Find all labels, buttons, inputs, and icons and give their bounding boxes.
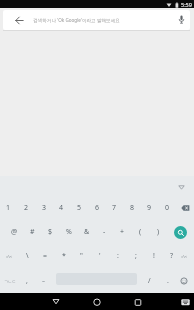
button[interactable]: \ bbox=[19, 246, 36, 266]
button[interactable]: + bbox=[114, 222, 131, 242]
button[interactable]: 9 bbox=[141, 198, 158, 218]
staticText: ; bbox=[135, 251, 137, 261]
button[interactable]: 7 bbox=[106, 198, 123, 218]
staticText: & bbox=[84, 227, 90, 237]
button[interactable]: 5 bbox=[71, 198, 88, 218]
staticText: \ bbox=[26, 251, 29, 261]
staticText: , bbox=[26, 276, 28, 286]
staticText: @ bbox=[11, 227, 18, 237]
staticText: ㄱㄴㄷ bbox=[4, 279, 16, 284]
staticText: ? bbox=[170, 251, 174, 261]
button[interactable] bbox=[176, 199, 194, 217]
button[interactable]: - bbox=[96, 222, 113, 242]
button[interactable]: 3 bbox=[36, 198, 53, 218]
button[interactable]: ? bbox=[163, 246, 180, 266]
button[interactable]: & bbox=[78, 222, 95, 242]
button[interactable] bbox=[177, 296, 193, 308]
staticText: % bbox=[66, 227, 72, 237]
staticText: . bbox=[167, 276, 169, 286]
staticText: 7 bbox=[112, 203, 117, 213]
staticText: # bbox=[30, 227, 35, 237]
button[interactable]: = bbox=[37, 246, 54, 266]
button[interactable]: ) bbox=[150, 222, 167, 242]
button[interactable] bbox=[47, 293, 64, 310]
staticText: : bbox=[117, 251, 119, 261]
staticText: – bbox=[42, 277, 46, 285]
button[interactable] bbox=[88, 293, 105, 310]
button[interactable]: * bbox=[55, 246, 72, 266]
staticText: ) bbox=[157, 227, 160, 237]
button[interactable]: 6 bbox=[89, 198, 106, 218]
button[interactable] bbox=[175, 272, 193, 290]
button[interactable]: 8 bbox=[124, 198, 141, 218]
staticText: 4 bbox=[59, 203, 64, 213]
staticText: 1 bbox=[6, 203, 11, 213]
button[interactable]: ! bbox=[145, 246, 162, 266]
button[interactable] bbox=[174, 226, 187, 239]
staticText: 3 bbox=[42, 203, 47, 213]
button[interactable]: $ bbox=[42, 222, 59, 242]
button[interactable]: =\< bbox=[1, 246, 18, 266]
staticText: + bbox=[120, 227, 125, 237]
button[interactable]: " bbox=[73, 246, 90, 266]
staticText: 0 bbox=[165, 203, 170, 213]
staticText: ( bbox=[139, 227, 142, 237]
button[interactable]: ' bbox=[91, 246, 108, 266]
staticText: ! bbox=[153, 251, 155, 261]
button[interactable]: – bbox=[35, 271, 52, 291]
button[interactable]: , bbox=[18, 271, 35, 291]
button[interactable]: 0 bbox=[159, 198, 176, 218]
button[interactable]: / bbox=[141, 271, 158, 291]
staticText: 8 bbox=[130, 203, 135, 213]
button[interactable]: ( bbox=[132, 222, 149, 242]
staticText: =\< bbox=[181, 254, 188, 259]
staticText: 2 bbox=[24, 203, 29, 213]
button[interactable]: 4 bbox=[53, 198, 70, 218]
button[interactable] bbox=[129, 293, 146, 310]
staticText: =\< bbox=[6, 254, 13, 259]
staticText: " bbox=[80, 251, 83, 261]
button[interactable]: 검색하거나 'Ok Google'이라고 말해보세요 bbox=[3, 10, 190, 30]
staticText: 5:59 bbox=[181, 1, 192, 8]
staticText: $ bbox=[48, 227, 53, 237]
staticText: ' bbox=[99, 251, 101, 261]
button[interactable]: ; bbox=[127, 246, 144, 266]
button[interactable]: =\< bbox=[176, 246, 193, 266]
staticText: / bbox=[148, 276, 151, 286]
staticText: = bbox=[43, 251, 48, 261]
button[interactable]: # bbox=[24, 222, 41, 242]
button[interactable]: % bbox=[60, 222, 77, 242]
staticText: * bbox=[62, 251, 66, 261]
button[interactable]: ㄱㄴㄷ bbox=[1, 271, 18, 291]
staticText: 9 bbox=[147, 203, 152, 213]
staticText: - bbox=[103, 227, 106, 237]
button[interactable]: 1 bbox=[0, 198, 17, 218]
button[interactable]: @ bbox=[6, 222, 23, 242]
button[interactable]: : bbox=[109, 246, 126, 266]
staticText: 6 bbox=[95, 203, 100, 213]
staticText: 검색하거나 'Ok Google'이라고 말해보세요 bbox=[33, 17, 120, 23]
button[interactable]: . bbox=[159, 271, 176, 291]
button[interactable]: 2 bbox=[18, 198, 35, 218]
staticText: 5 bbox=[77, 203, 82, 213]
